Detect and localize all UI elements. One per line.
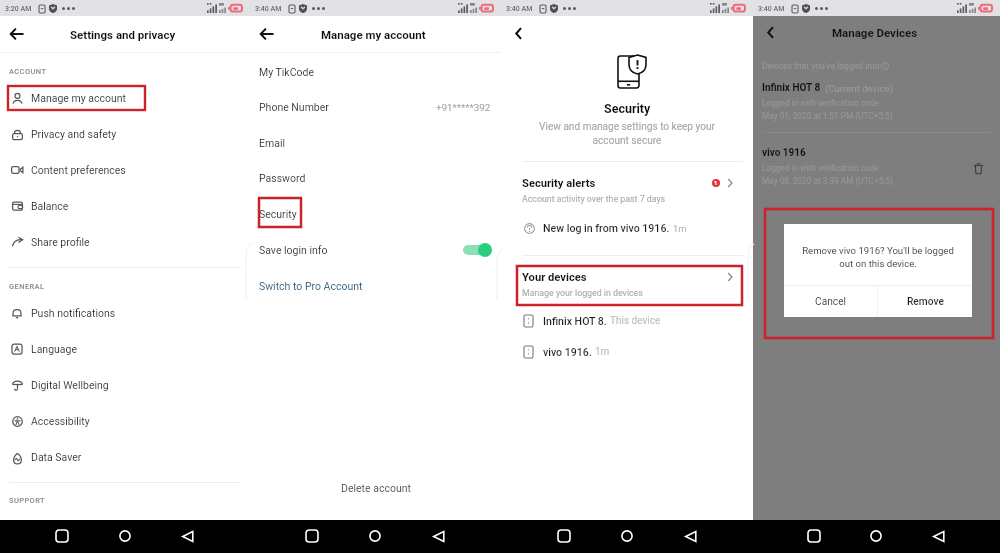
staticText: Digital Wellbeing — [31, 379, 109, 391]
staticText: May 01, 2020 at 1:51 PM (UTC+5:5) — [762, 111, 893, 121]
staticText: Language — [31, 343, 78, 355]
staticText: Remove — [907, 296, 944, 308]
staticText: Devices that you've logged into — [762, 61, 880, 71]
staticText: Email — [259, 137, 285, 149]
button[interactable] — [250, 270, 501, 302]
staticText: 1m — [673, 223, 687, 234]
staticText: Account activity over the past 7 days — [522, 194, 666, 204]
button[interactable]: Home — [865, 525, 887, 547]
staticText: Manage my account — [31, 92, 126, 104]
staticText: Security — [604, 101, 651, 116]
staticText: (Current device) — [825, 83, 893, 94]
button[interactable]: Home — [114, 525, 136, 547]
staticText: 3:40 AM — [255, 5, 282, 13]
button[interactable]: Recents — [301, 525, 323, 547]
staticText: Content preferences — [31, 164, 126, 176]
staticText: SUPPORT — [9, 496, 46, 505]
button[interactable] — [501, 340, 753, 366]
staticText: Security alerts — [522, 177, 596, 190]
staticText: Data Saver — [31, 451, 82, 463]
button[interactable] — [250, 56, 501, 88]
button[interactable]: Cancel — [784, 286, 877, 317]
staticText: 1 — [714, 180, 718, 186]
staticText: Your devices — [522, 271, 587, 284]
staticText: May 08, 2020 at 3:39 AM (UTC+5:5) — [762, 176, 893, 186]
button[interactable] — [250, 235, 501, 267]
button[interactable]: Back — [679, 525, 701, 547]
button[interactable] — [501, 170, 753, 202]
staticText: Accessibility — [31, 415, 90, 427]
staticText: Security — [259, 208, 297, 220]
staticText: Manage Devices — [832, 26, 918, 39]
button[interactable] — [250, 199, 501, 231]
button[interactable]: Remove — [878, 286, 972, 317]
staticText: 3:40 AM — [506, 5, 533, 13]
button[interactable]: Back — [176, 525, 198, 547]
staticText: Save login info — [259, 244, 328, 256]
staticText: View and manage settings to keep your ac… — [533, 121, 721, 146]
staticText: Infinix HOT 8. — [543, 315, 607, 327]
button[interactable]: Home — [364, 525, 386, 547]
button[interactable]: Delete account — [250, 476, 501, 500]
staticText: Delete account — [341, 482, 411, 494]
button[interactable] — [0, 82, 250, 114]
button[interactable] — [0, 154, 250, 186]
staticText: 1m — [595, 346, 610, 358]
staticText: GENERAL — [9, 282, 45, 291]
staticText: +91*****392 — [436, 102, 491, 113]
staticText: Share profile — [31, 236, 90, 248]
button[interactable]: Back — [427, 525, 449, 547]
button[interactable] — [0, 369, 250, 401]
staticText: Phone Number — [259, 101, 329, 113]
button[interactable]: Recents — [51, 525, 73, 547]
button[interactable] — [0, 190, 250, 222]
button[interactable]: Back — [6, 23, 28, 45]
button[interactable]: Recents — [803, 525, 825, 547]
staticText: Infinix HOT 8 — [762, 82, 821, 94]
staticText: Password — [259, 172, 306, 184]
staticText: Settings and privacy — [70, 28, 176, 41]
staticText: 3:20 AM — [5, 5, 32, 13]
button[interactable] — [501, 309, 753, 335]
staticText: vivo 1916 — [762, 147, 806, 159]
button[interactable]: Back — [507, 22, 529, 44]
staticText: Balance — [31, 200, 69, 212]
staticText: Switch to Pro Account — [259, 280, 363, 292]
staticText: Privacy and safety — [31, 128, 117, 140]
button[interactable] — [0, 118, 250, 150]
staticText: 3:40 AM — [758, 5, 785, 13]
staticText: Logged in with verification code — [762, 163, 879, 173]
staticText: ACCOUNT — [9, 67, 47, 76]
button[interactable]: Back — [927, 525, 949, 547]
staticText: My TikCode — [259, 66, 314, 78]
button[interactable] — [250, 127, 501, 159]
button[interactable] — [250, 92, 501, 124]
staticText: New log in from vivo 1916. — [543, 222, 670, 234]
button[interactable] — [0, 405, 250, 437]
button[interactable] — [0, 226, 250, 258]
staticText: This device — [610, 315, 661, 327]
button[interactable]: Home — [616, 525, 638, 547]
button[interactable]: Back — [759, 21, 781, 43]
button[interactable] — [0, 297, 250, 329]
staticText: Remove vivo 1916? You'll be logged out o… — [797, 245, 959, 270]
button[interactable] — [250, 163, 501, 195]
staticText: Logged in with verification code — [762, 98, 879, 108]
staticText: Push notifications — [31, 307, 116, 319]
button[interactable]: Save login info toggle — [463, 243, 493, 257]
button[interactable] — [501, 266, 753, 302]
button[interactable] — [0, 441, 250, 473]
staticText: Cancel — [815, 296, 847, 308]
staticText: Manage your logged in devices — [522, 288, 643, 298]
staticText: Manage my account — [321, 28, 426, 41]
button[interactable] — [501, 216, 753, 242]
button[interactable] — [0, 333, 250, 365]
staticText: vivo 1916. — [543, 346, 592, 358]
button[interactable]: Recents — [553, 525, 575, 547]
button[interactable]: Remove device — [969, 159, 987, 177]
button[interactable]: Back — [256, 23, 278, 45]
